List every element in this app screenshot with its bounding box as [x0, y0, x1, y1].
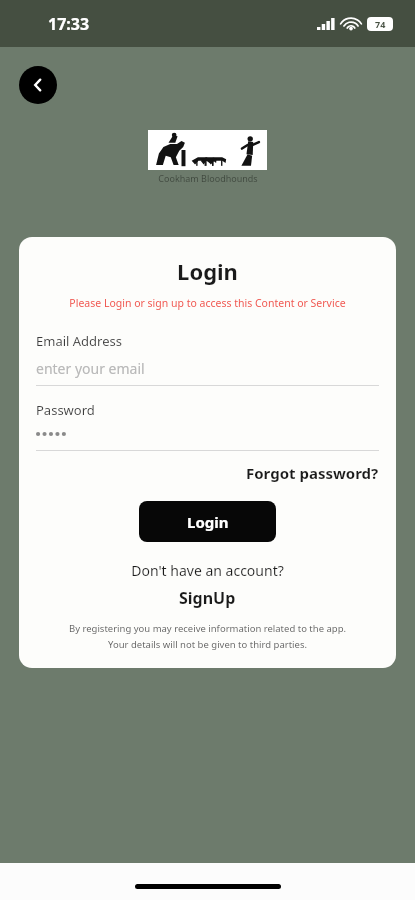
staticText: Login [187, 512, 229, 532]
staticText: Please Login or sign up to access this C… [36, 296, 379, 310]
staticText: Cookham Bloodhounds [158, 172, 258, 184]
button[interactable]: Login [139, 501, 276, 542]
button[interactable]: Back [19, 66, 57, 104]
staticText: Your details will not be given to third … [36, 638, 379, 651]
staticText: By registering you may receive informati… [36, 622, 379, 635]
button[interactable]: SignUp [179, 587, 236, 609]
staticText: Don't have an account? [36, 561, 379, 580]
staticText: enter your email [36, 359, 145, 378]
staticText: 74 [375, 18, 386, 30]
staticText: Email Address [36, 332, 122, 350]
staticText: Password [36, 401, 95, 419]
button[interactable]: enter your email [36, 359, 379, 378]
button[interactable] [36, 427, 379, 441]
button[interactable]: Forgot password? [246, 463, 379, 483]
staticText: Login [36, 256, 379, 286]
staticText: 17:33 [48, 13, 90, 35]
